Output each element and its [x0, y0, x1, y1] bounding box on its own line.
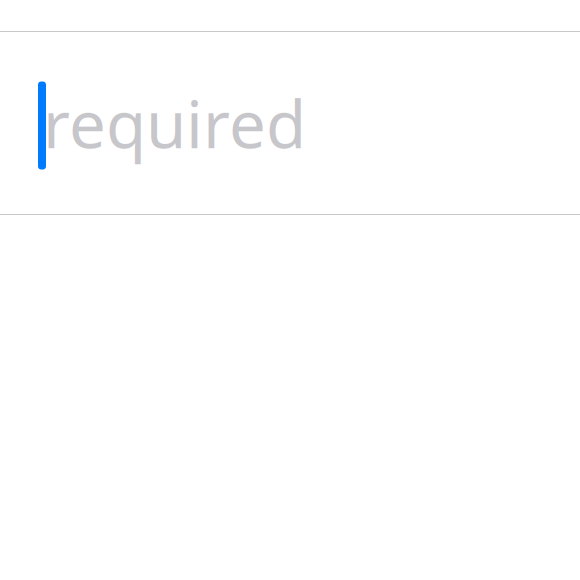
staticText: required [43, 80, 306, 166]
button[interactable]: required [0, 32, 580, 214]
